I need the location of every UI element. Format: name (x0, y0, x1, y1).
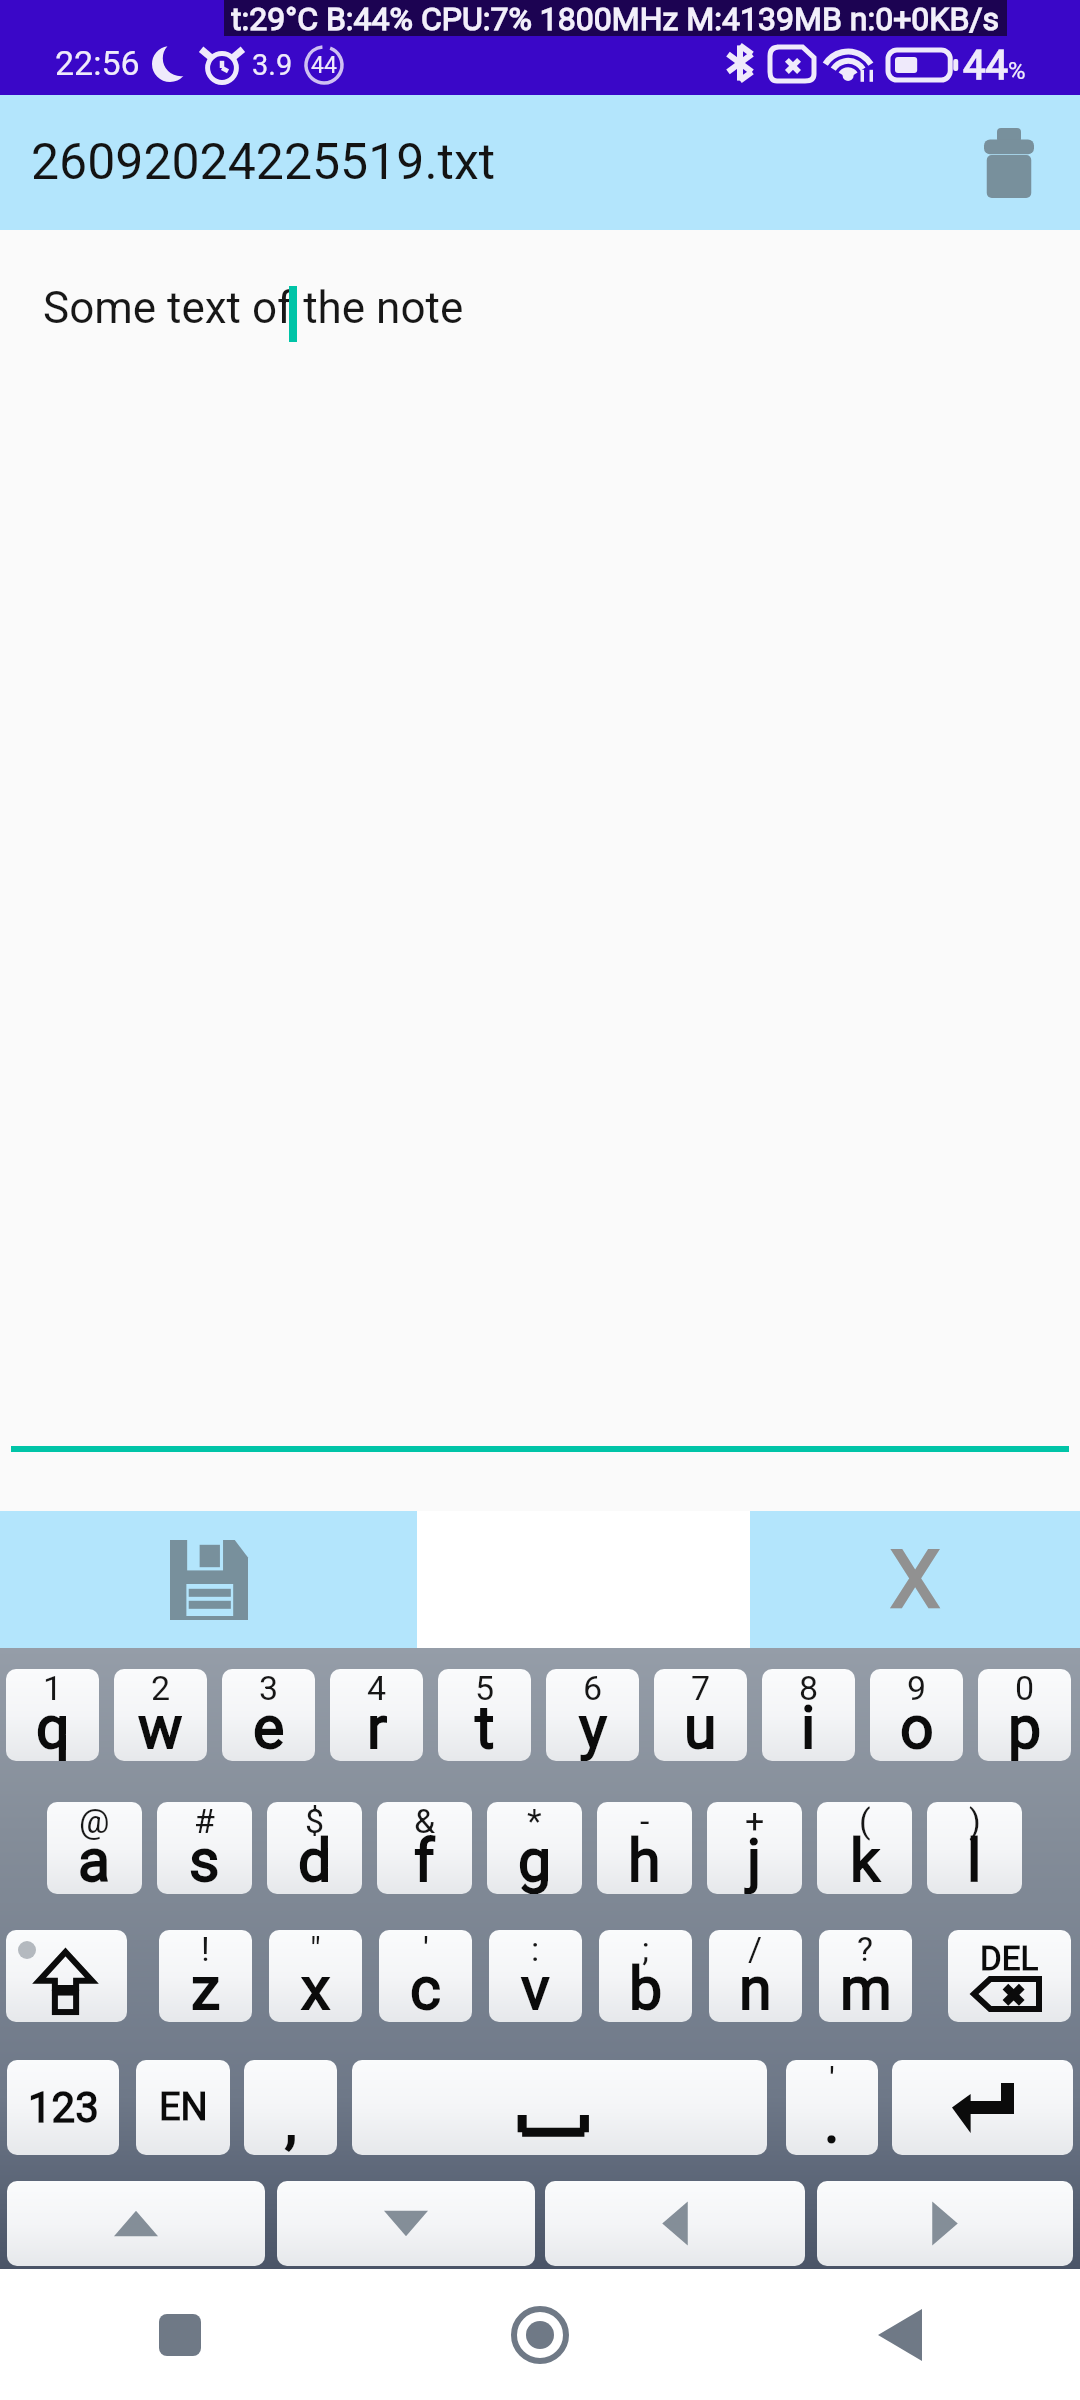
staticText: s (189, 1826, 220, 1894)
button[interactable]: Home (360, 2269, 720, 2400)
button[interactable]: 4 (330, 1669, 423, 1761)
button[interactable]: ; (599, 1930, 692, 2022)
staticText: @ (79, 1802, 110, 1841)
staticText: d (298, 1826, 332, 1894)
staticText: 6 (583, 1669, 603, 1708)
button[interactable]: 3 (222, 1669, 315, 1761)
staticText: l (967, 1826, 982, 1894)
button[interactable]: ? (819, 1930, 912, 2022)
staticText: g (518, 1826, 552, 1894)
staticText: f (414, 1826, 435, 1894)
staticText: , (285, 2087, 297, 2155)
button[interactable]: Save (0, 1511, 417, 1648)
staticText: ; (642, 1930, 650, 1969)
button[interactable]: 8 (762, 1669, 855, 1761)
button[interactable]: @ (47, 1802, 142, 1894)
button[interactable]: 2 (114, 1669, 207, 1761)
staticText: 3 (259, 1669, 279, 1708)
staticText: j (747, 1826, 762, 1894)
button[interactable]: $ (267, 1802, 362, 1894)
button[interactable]: 7 (654, 1669, 747, 1761)
button[interactable]: , (244, 2060, 337, 2155)
button[interactable]: X (750, 1511, 1080, 1648)
button[interactable]: & (377, 1802, 472, 1894)
button[interactable]: Enter (892, 2060, 1073, 2155)
staticText: DEL (980, 1939, 1039, 1978)
button[interactable]: 6 (546, 1669, 639, 1761)
staticText: 44 (311, 52, 337, 79)
button[interactable]: * (487, 1802, 582, 1894)
staticText: 0 (1015, 1669, 1035, 1708)
button[interactable]: Delete (948, 1930, 1071, 2022)
staticText: 44 (963, 42, 1008, 89)
button[interactable]: Space (352, 2060, 767, 2155)
staticText: ' (829, 2060, 835, 2099)
staticText: 4 (367, 1669, 387, 1708)
button[interactable]: 123 (7, 2060, 119, 2155)
staticText: 123 (28, 2083, 99, 2132)
staticText: 7 (691, 1669, 711, 1708)
staticText: ? (857, 1930, 874, 1969)
staticText: 2 (151, 1669, 171, 1708)
staticText: p (1008, 1693, 1042, 1761)
staticText: r (367, 1693, 387, 1761)
staticText: h (628, 1826, 661, 1894)
staticText: - (640, 1802, 650, 1841)
staticText: x (301, 1954, 331, 2022)
button[interactable]: Cursor down (277, 2181, 535, 2266)
staticText: w (138, 1693, 183, 1761)
staticText: % (1008, 57, 1026, 85)
staticText: / (748, 1930, 763, 1969)
staticText: " (310, 1930, 321, 1969)
staticText: ( (859, 1802, 871, 1841)
staticText: : (531, 1930, 540, 1969)
staticText: y (579, 1693, 607, 1761)
button[interactable]: 9 (870, 1669, 963, 1761)
staticText: 8 (799, 1669, 819, 1708)
button[interactable]: ) (927, 1802, 1022, 1894)
button[interactable]: Cursor left (545, 2181, 805, 2266)
staticText: 5 (475, 1669, 495, 1708)
staticText: q (36, 1693, 70, 1761)
staticText: ' (423, 1930, 429, 1969)
button[interactable]: + (707, 1802, 802, 1894)
staticText: EN (159, 2085, 208, 2130)
button[interactable]: 1 (6, 1669, 99, 1761)
button[interactable]: Delete note (959, 113, 1059, 213)
button[interactable]: Back (720, 2269, 1080, 2400)
staticText: n (739, 1954, 772, 2022)
staticText: X (890, 1533, 941, 1627)
button[interactable]: - (597, 1802, 692, 1894)
staticText: t:29°C B:44% CPU:7% 1800MHz M:4139MB n:0… (231, 0, 1000, 36)
staticText: z (191, 1954, 221, 2022)
button[interactable]: ! (159, 1930, 252, 2022)
staticText: + (745, 1802, 765, 1841)
staticText: & (414, 1802, 436, 1841)
button[interactable]: Shift (6, 1930, 127, 2022)
staticText: 3.9 (252, 48, 293, 82)
staticText: c (410, 1954, 441, 2022)
staticText: Some text of the note (43, 282, 464, 334)
staticText: a (78, 1826, 111, 1894)
button[interactable]: / (709, 1930, 802, 2022)
button[interactable]: " (269, 1930, 362, 2022)
button[interactable]: 5 (438, 1669, 531, 1761)
staticText: ) (969, 1802, 981, 1841)
staticText: * (527, 1802, 542, 1841)
staticText: 22:56 (55, 43, 140, 83)
staticText: 9 (907, 1669, 927, 1708)
button[interactable]: Cursor up (7, 2181, 265, 2266)
staticText: # (194, 1802, 215, 1841)
button[interactable]: 0 (978, 1669, 1071, 1761)
button[interactable]: ' (786, 2060, 878, 2155)
button[interactable]: ' (379, 1930, 472, 2022)
button[interactable]: EN (136, 2060, 230, 2155)
staticText: i (801, 1693, 816, 1761)
button[interactable]: # (157, 1802, 252, 1894)
button[interactable]: Recent apps (0, 2269, 360, 2400)
staticText: b (629, 1954, 663, 2022)
staticText: . (824, 2087, 840, 2155)
button[interactable]: : (489, 1930, 582, 2022)
button[interactable]: ( (817, 1802, 912, 1894)
button[interactable]: Cursor right (817, 2181, 1073, 2266)
